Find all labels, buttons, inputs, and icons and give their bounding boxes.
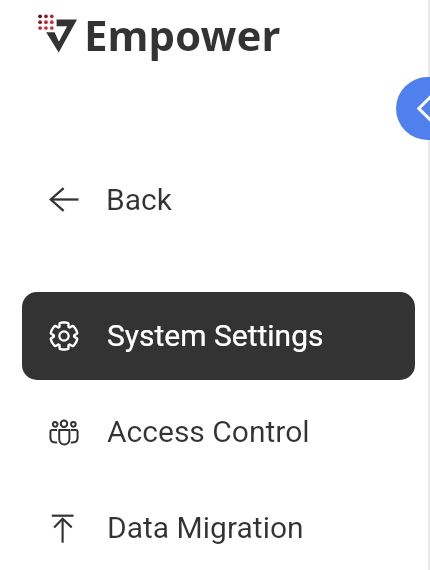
- staticText: Empower: [84, 6, 281, 63]
- staticText: System Settings: [107, 318, 324, 353]
- button[interactable]: System Settings: [22, 292, 415, 380]
- staticText: Access Control: [107, 414, 310, 449]
- button[interactable]: Data Migration: [0, 497, 430, 557]
- button[interactable]: Back: [0, 170, 430, 228]
- button[interactable]: Access Control: [0, 401, 430, 461]
- staticText: Back: [106, 182, 172, 217]
- button[interactable]: Collapse sidebar: [396, 77, 430, 140]
- staticText: Data Migration: [107, 510, 304, 545]
